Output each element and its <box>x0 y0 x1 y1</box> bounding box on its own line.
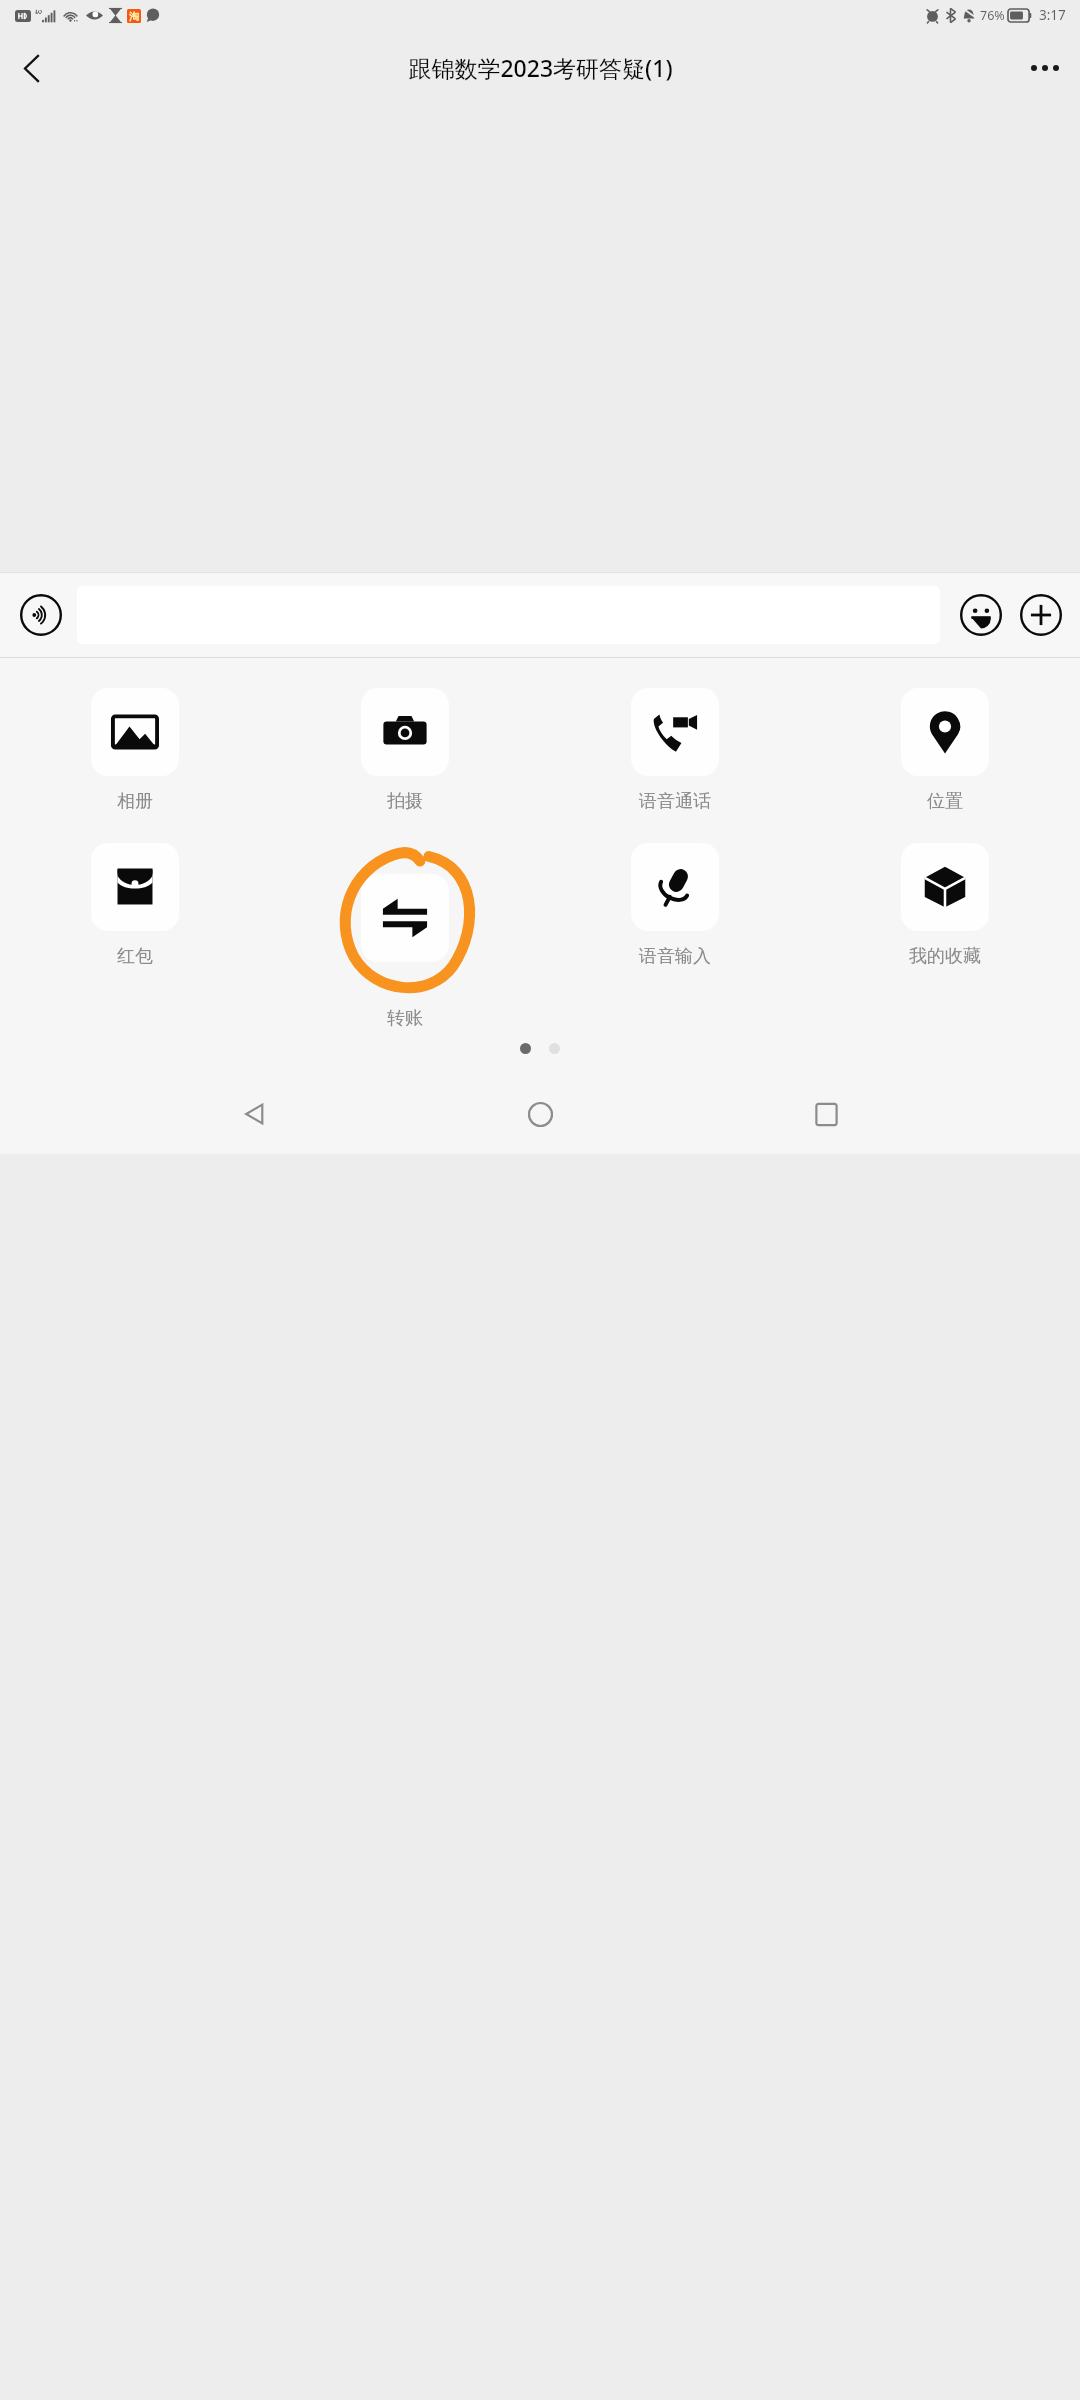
staticText: 位置 <box>927 790 963 813</box>
staticText: 语音输入 <box>639 945 711 968</box>
staticText: 相册 <box>117 790 153 813</box>
button[interactable]: Emoji <box>954 588 1008 642</box>
staticText: 76% <box>980 7 1005 24</box>
staticText: 拍摄 <box>387 790 423 813</box>
button[interactable]: Home <box>509 1083 571 1145</box>
button[interactable]: Voice message <box>14 588 68 642</box>
button[interactable]: 语音通话 <box>540 688 810 813</box>
button[interactable]: Back <box>224 1083 286 1145</box>
button[interactable]: More attachments <box>1014 588 1068 642</box>
button[interactable]: 红包 <box>0 843 270 968</box>
button[interactable]: Back <box>0 37 62 99</box>
staticText: 跟锦数学2023考研答疑(1) <box>408 52 673 83</box>
staticText: 转账 <box>387 1007 423 1030</box>
button[interactable]: 转账 <box>270 843 540 1030</box>
button[interactable]: 我的收藏 <box>810 843 1080 968</box>
staticText: 淘 <box>129 10 139 23</box>
staticText: 红包 <box>117 945 153 968</box>
button[interactable]: Recent apps <box>795 1083 857 1145</box>
staticText: 3:17 <box>1039 6 1066 24</box>
staticText: 我的收藏 <box>909 945 981 968</box>
staticText: 语音通话 <box>639 790 711 813</box>
button[interactable]: 位置 <box>810 688 1080 813</box>
button[interactable]: More options <box>1010 33 1080 103</box>
button[interactable]: 相册 <box>0 688 270 813</box>
button[interactable]: 语音输入 <box>540 843 810 968</box>
button[interactable]: 拍摄 <box>270 688 540 813</box>
